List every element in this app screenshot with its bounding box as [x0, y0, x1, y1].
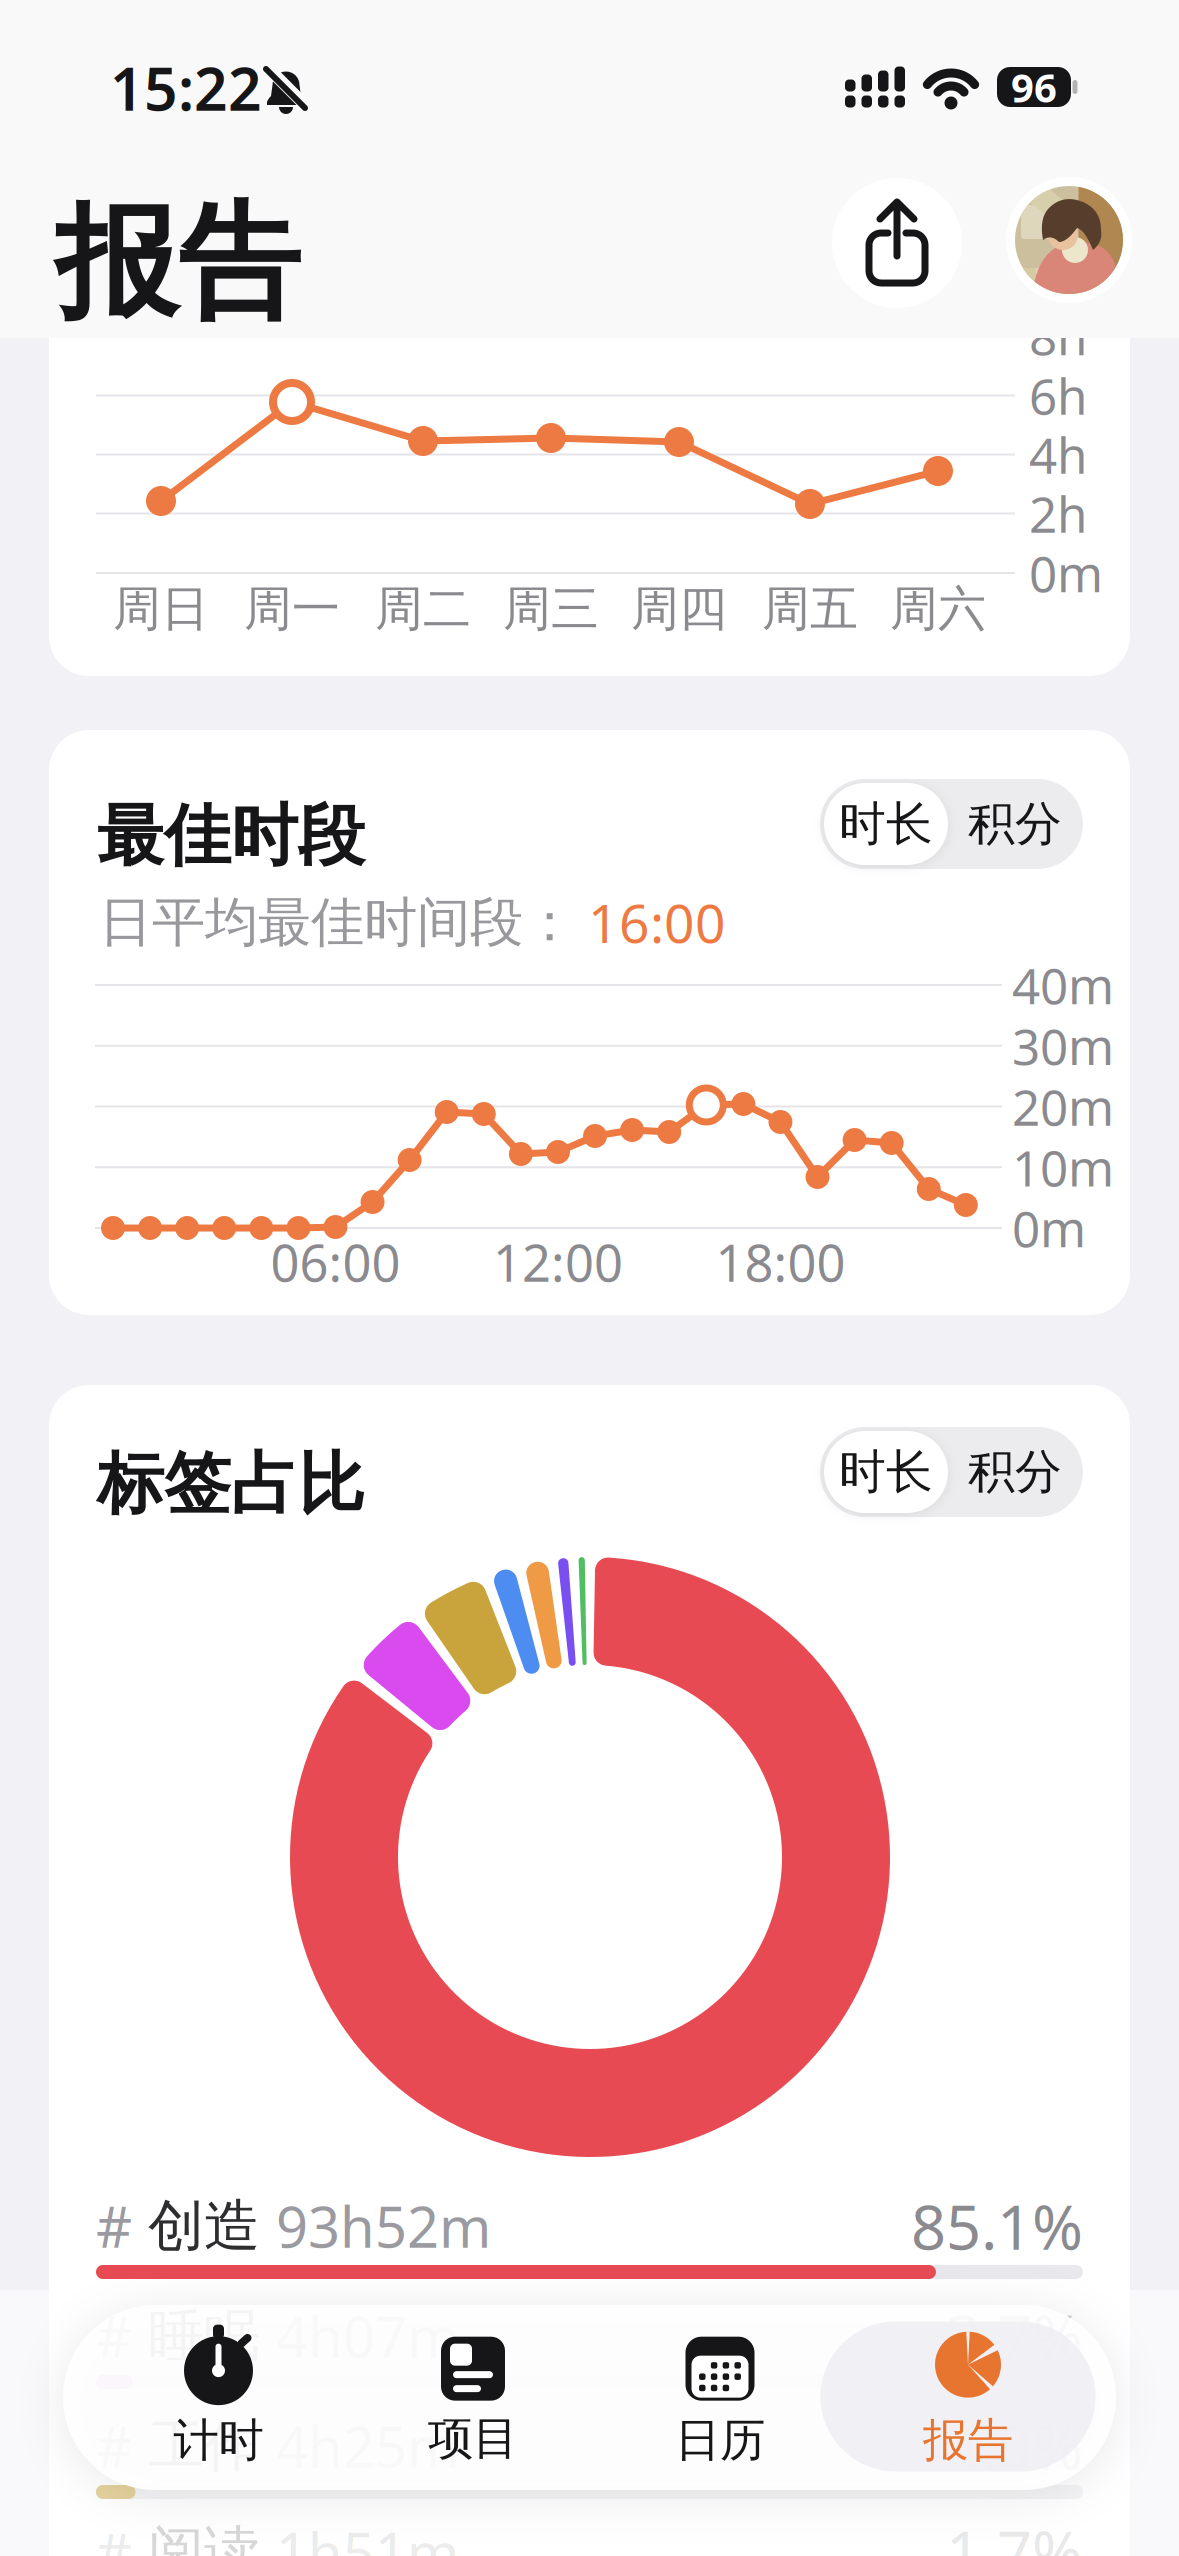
staticText: 时长 [839, 1443, 933, 1501]
staticText: 8h [1029, 303, 1087, 369]
staticText: 周一 [244, 579, 340, 638]
button[interactable]: 日历 [596, 2327, 844, 2468]
staticText: 报告 [55, 188, 301, 339]
button[interactable]: 积分 [950, 1431, 1080, 1513]
staticText: 40m [1012, 952, 1114, 1018]
button[interactable]: 项目 [350, 2329, 596, 2466]
staticText: 周四 [631, 579, 727, 638]
button[interactable]: 报告 [844, 2327, 1092, 2468]
staticText: 周六 [890, 579, 986, 638]
staticText: 10m [1012, 1134, 1114, 1200]
staticText: 85.1% [911, 2185, 1083, 2267]
button[interactable]: 时长 [824, 783, 948, 865]
staticText: 0m [1012, 1195, 1086, 1261]
staticText: 96 [1011, 60, 1057, 113]
staticText: 工作 [148, 2412, 260, 2480]
staticText: 周二 [375, 579, 471, 638]
staticText: 1.7% [946, 2511, 1083, 2556]
staticText: 睡眠 [148, 2302, 260, 2370]
button[interactable]: 时长 [824, 1431, 948, 1513]
staticText: 阅读 [148, 2518, 260, 2556]
staticText: 06:00 [270, 1228, 400, 1296]
staticText: 项目 [428, 2411, 518, 2466]
staticText: 周五 [762, 579, 858, 638]
staticText: 日历 [675, 2413, 765, 2468]
staticText: 日平均最佳时间段： [99, 890, 576, 955]
staticText: 4.0% [946, 2405, 1083, 2487]
staticText: 0m [1029, 540, 1103, 606]
staticText: 4h [1029, 422, 1087, 487]
staticText: 积分 [968, 795, 1062, 853]
button[interactable]: 积分 [950, 783, 1080, 865]
staticText: # [96, 2515, 132, 2556]
staticText: 12:00 [493, 1228, 623, 1296]
staticText: 计时 [173, 2413, 263, 2468]
button[interactable]: 计时 [87, 2327, 350, 2468]
staticText: 积分 [968, 1443, 1062, 1501]
staticText: 报告 [923, 2413, 1013, 2468]
button[interactable] [1006, 177, 1132, 303]
staticText: 最佳时段 [97, 795, 365, 877]
staticText: 1h51m [276, 2515, 459, 2556]
staticText: # [96, 2189, 132, 2263]
staticText: 4h07m [276, 2299, 459, 2373]
staticText: 15:22 [110, 49, 262, 127]
staticText: 创造 [148, 2192, 260, 2260]
staticText: 20m [1012, 1074, 1114, 1139]
staticText: 周三 [503, 579, 599, 638]
staticText: 3.7% [946, 2295, 1083, 2377]
staticText: 4h25m [276, 2409, 459, 2483]
staticText: 18:00 [715, 1228, 845, 1296]
staticText: 93h52m [276, 2189, 491, 2263]
staticText: 16:00 [588, 887, 726, 958]
staticText: 标签占比 [97, 1443, 365, 1525]
staticText: 2h [1029, 481, 1087, 546]
staticText: 周日 [113, 579, 209, 638]
button[interactable] [832, 178, 962, 308]
staticText: 时长 [839, 795, 933, 853]
staticText: 6h [1029, 363, 1087, 428]
staticText: 30m [1012, 1013, 1114, 1078]
